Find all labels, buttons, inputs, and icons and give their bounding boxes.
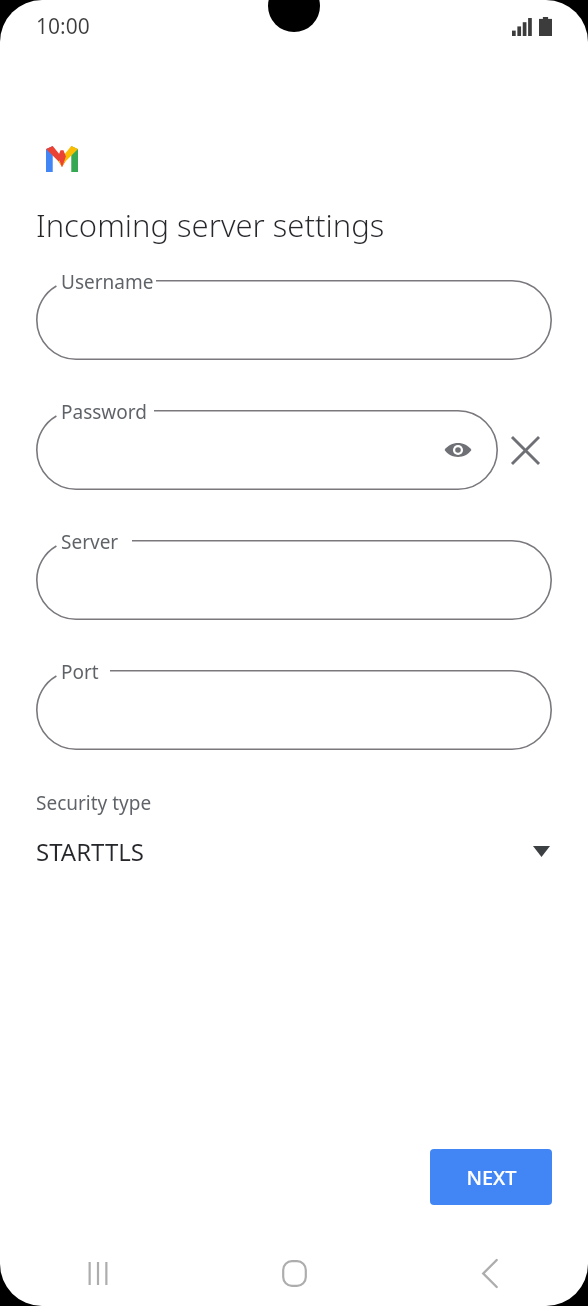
staticText: Incoming server settings (36, 204, 385, 246)
staticText: STARTTLS (36, 835, 145, 868)
button[interactable]: Show password (440, 432, 476, 468)
button[interactable]: Clear password (498, 423, 552, 477)
button[interactable]: STARTTLS (0, 835, 588, 868)
staticText: Port (61, 659, 99, 685)
button[interactable]: Home (196, 1240, 392, 1306)
button[interactable]: Show password (36, 410, 498, 490)
staticText: Server (61, 529, 119, 555)
button[interactable]: Port (36, 670, 552, 750)
staticText: Username (61, 269, 154, 295)
staticText: Security type (36, 790, 152, 816)
staticText: NEXT (466, 1164, 517, 1191)
staticText: 10:00 (36, 12, 90, 41)
button[interactable]: Back (392, 1240, 588, 1306)
button[interactable]: Server (36, 540, 552, 620)
button[interactable]: Recents (0, 1240, 196, 1306)
button[interactable]: Username (36, 280, 552, 360)
button[interactable]: NEXT (430, 1149, 552, 1205)
staticText: Password (61, 399, 147, 425)
